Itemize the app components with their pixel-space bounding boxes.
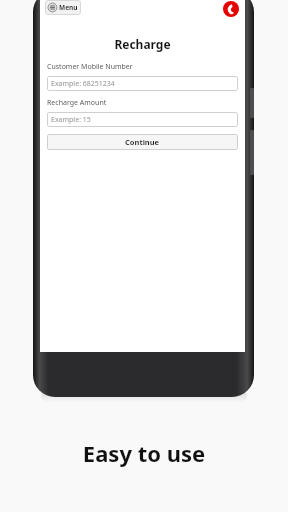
staticText: Customer Mobile Number — [47, 62, 133, 72]
staticText: Menu — [59, 3, 78, 12]
button[interactable]: Example: 15 — [47, 112, 238, 127]
staticText: Example: 68251234 — [51, 79, 115, 89]
staticText: Easy to use — [0, 438, 288, 468]
button[interactable]: Menu — [45, 0, 81, 15]
staticText: Example: 15 — [51, 115, 91, 125]
staticText: Continue — [125, 137, 160, 147]
button[interactable]: Continue — [47, 134, 238, 150]
staticText: Recharge — [40, 36, 245, 52]
staticText: Recharge Amount — [47, 98, 107, 108]
button[interactable]: Vodafone — [223, 1, 239, 17]
button[interactable]: Example: 68251234 — [47, 76, 238, 91]
